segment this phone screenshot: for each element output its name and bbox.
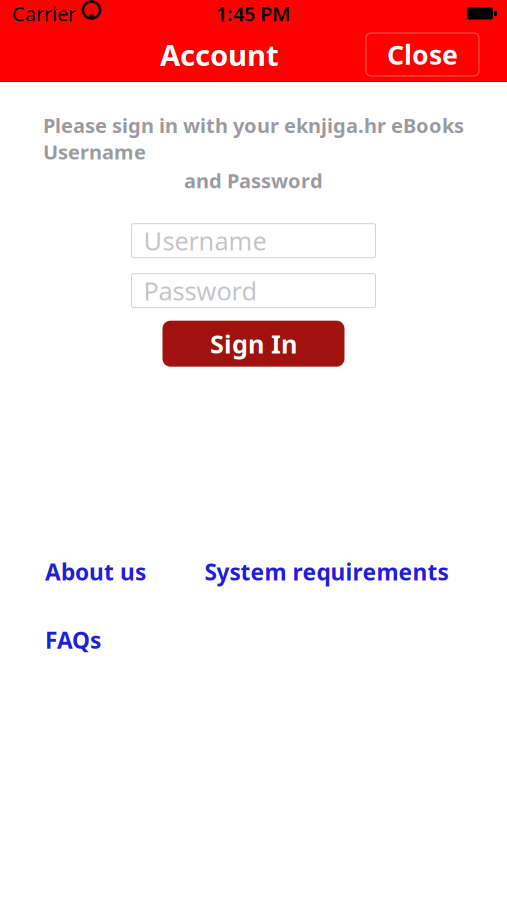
button[interactable]: About us — [45, 557, 146, 587]
button[interactable]: System requirements — [204, 557, 448, 587]
button[interactable]: Close — [366, 33, 479, 76]
staticText: Close — [387, 37, 458, 72]
staticText: Carrier — [12, 0, 76, 27]
staticText: FAQs — [45, 625, 101, 655]
staticText: Username — [143, 224, 266, 257]
staticText: System requirements — [204, 557, 448, 587]
staticText: Please sign in with your eknjiga.hr eBoo… — [43, 112, 464, 165]
staticText: and Password — [184, 167, 323, 194]
button[interactable]: FAQs — [45, 625, 101, 655]
button[interactable]: Sign In — [162, 321, 344, 367]
staticText: Account — [160, 35, 279, 74]
staticText: Sign In — [210, 327, 297, 360]
staticText: About us — [45, 557, 146, 587]
staticText: 1:45 PM — [216, 0, 291, 27]
staticText: Password — [143, 274, 257, 307]
